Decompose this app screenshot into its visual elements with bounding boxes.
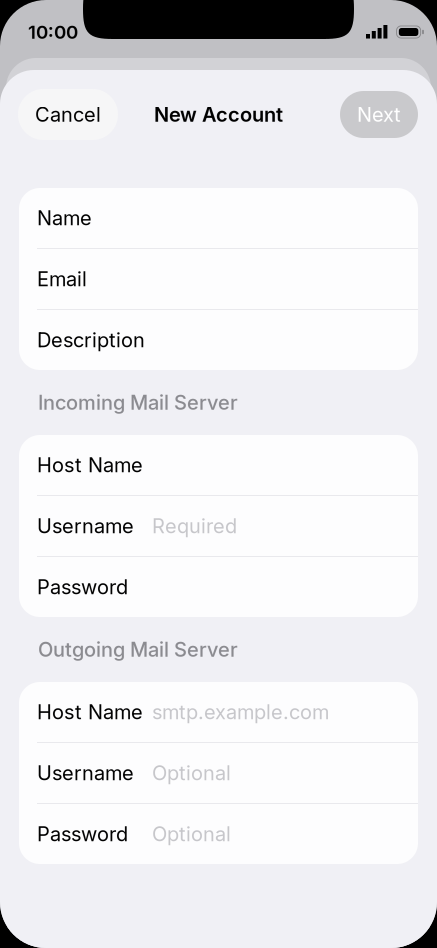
staticText: Password bbox=[37, 575, 128, 599]
staticText: Outgoing Mail Server bbox=[38, 637, 238, 662]
staticText: Cancel bbox=[35, 102, 101, 127]
button[interactable]: Password bbox=[19, 804, 418, 864]
staticText: Username bbox=[37, 514, 134, 538]
staticText: Host Name bbox=[37, 700, 143, 724]
staticText: Username bbox=[37, 761, 134, 785]
staticText: Optional bbox=[152, 822, 231, 846]
staticText: Required bbox=[152, 514, 237, 538]
button[interactable]: Name bbox=[19, 188, 418, 248]
button[interactable]: Username bbox=[19, 743, 418, 803]
staticText: Next bbox=[357, 102, 401, 127]
staticText: Incoming Mail Server bbox=[38, 390, 238, 415]
button[interactable]: Cancel bbox=[18, 89, 118, 140]
staticText: Password bbox=[37, 822, 128, 846]
button[interactable]: Username bbox=[19, 496, 418, 556]
staticText: Name bbox=[37, 206, 92, 230]
button[interactable]: Description bbox=[19, 310, 418, 370]
staticText: Description bbox=[37, 328, 145, 352]
staticText: Optional bbox=[152, 761, 231, 785]
button[interactable]: Next bbox=[340, 91, 418, 138]
staticText: smtp.example.com bbox=[152, 700, 329, 724]
button[interactable]: Password bbox=[19, 557, 418, 617]
button[interactable]: Host Name bbox=[19, 682, 418, 742]
staticText: 10:00 bbox=[28, 21, 78, 43]
staticText: Email bbox=[37, 267, 87, 291]
staticText: New Account bbox=[154, 102, 283, 127]
button[interactable]: Email bbox=[19, 249, 418, 309]
button[interactable]: Host Name bbox=[19, 435, 418, 495]
staticText: Host Name bbox=[37, 453, 143, 477]
